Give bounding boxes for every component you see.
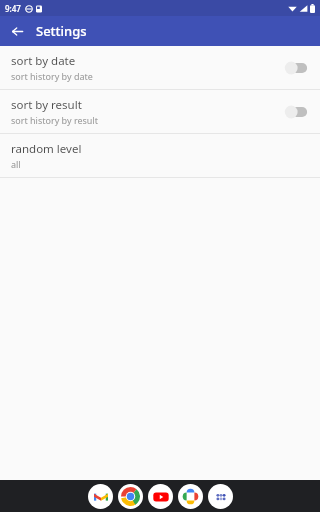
- staticText: sort by date: [11, 53, 76, 69]
- button[interactable]: Gmail: [88, 484, 113, 509]
- button[interactable]: random level: [0, 134, 320, 177]
- button[interactable]: sort by result: [0, 90, 320, 133]
- staticText: sort by result: [11, 97, 82, 113]
- staticText: all: [11, 158, 21, 170]
- button[interactable]: Toggle sort by result: [281, 102, 311, 122]
- staticText: Settings: [36, 22, 87, 40]
- staticText: random level: [11, 141, 82, 157]
- staticText: sort history by date: [11, 70, 93, 82]
- button[interactable]: Toggle sort by date: [281, 58, 311, 78]
- button[interactable]: All apps: [208, 484, 233, 509]
- button[interactable]: sort by date: [0, 46, 320, 89]
- staticText: sort history by result: [11, 114, 98, 126]
- staticText: 9:47: [5, 3, 21, 14]
- button[interactable]: Photos: [178, 484, 203, 509]
- button[interactable]: Back: [4, 18, 30, 44]
- button[interactable]: YouTube: [148, 484, 173, 509]
- button[interactable]: Chrome: [118, 484, 143, 509]
